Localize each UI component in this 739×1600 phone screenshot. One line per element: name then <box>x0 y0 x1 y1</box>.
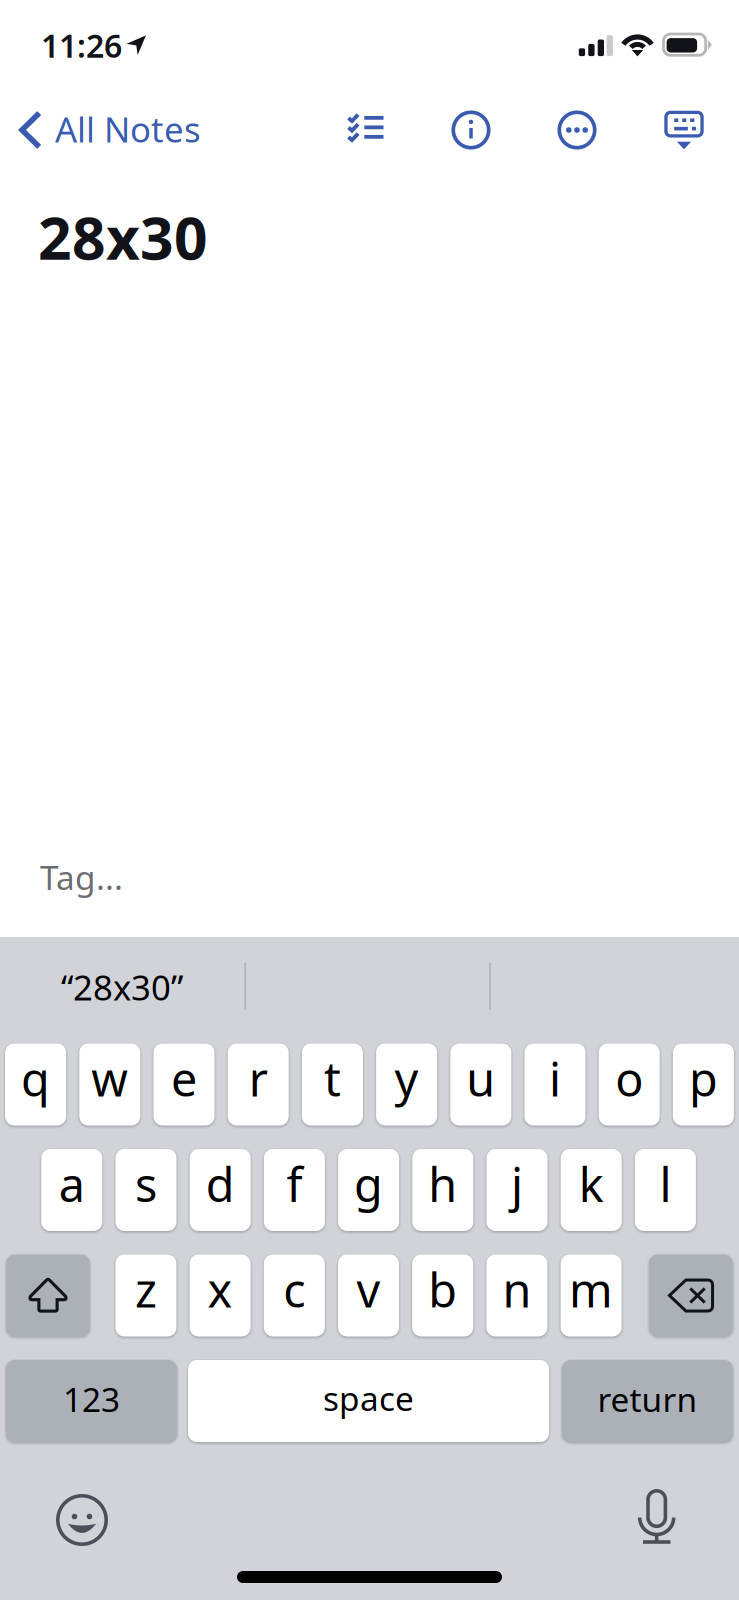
button[interactable]: c <box>264 1254 325 1336</box>
button[interactable]: t <box>302 1043 363 1125</box>
button[interactable]: r <box>228 1043 289 1125</box>
staticText: x <box>208 1258 233 1320</box>
staticText: 28x30 <box>38 198 208 276</box>
button[interactable]: q <box>5 1043 66 1125</box>
staticText: u <box>466 1047 495 1109</box>
staticText: p <box>689 1047 718 1109</box>
staticText: i <box>549 1047 561 1109</box>
staticText: r <box>249 1047 268 1109</box>
button[interactable]: h <box>412 1149 473 1231</box>
button[interactable]: Note info <box>433 92 509 168</box>
staticText: n <box>502 1258 531 1320</box>
button[interactable]: Delete <box>649 1254 733 1336</box>
staticText: g <box>354 1153 383 1215</box>
button[interactable]: x <box>190 1254 251 1336</box>
staticText: w <box>91 1047 128 1109</box>
staticText: a <box>59 1153 85 1215</box>
button[interactable]: g <box>338 1149 399 1231</box>
staticText: f <box>286 1153 302 1215</box>
button[interactable]: Checklist <box>328 92 404 160</box>
staticText: j <box>511 1153 523 1215</box>
button[interactable]: d <box>190 1149 251 1231</box>
staticText: s <box>135 1153 157 1215</box>
staticText: h <box>428 1153 457 1215</box>
staticText: 123 <box>63 1377 120 1421</box>
button[interactable]: More options <box>539 92 615 168</box>
button[interactable]: s <box>115 1149 176 1231</box>
staticText: l <box>659 1153 671 1215</box>
button[interactable]: m <box>561 1254 622 1336</box>
button[interactable]: v <box>338 1254 399 1336</box>
button[interactable]: f <box>264 1149 325 1231</box>
staticText: All Notes <box>55 106 201 152</box>
staticText: o <box>615 1047 643 1109</box>
staticText: y <box>395 1047 419 1109</box>
staticText: q <box>21 1047 50 1109</box>
staticText: z <box>135 1258 157 1320</box>
staticText: Tag... <box>40 855 123 899</box>
button[interactable]: 123 <box>6 1360 177 1442</box>
button[interactable]: b <box>412 1254 473 1336</box>
staticText: 11:26 <box>41 24 122 66</box>
button[interactable]: k <box>561 1149 622 1231</box>
staticText: return <box>597 1377 697 1421</box>
staticText: m <box>569 1258 613 1320</box>
staticText: space <box>323 1376 414 1420</box>
button[interactable]: Hide keyboard <box>646 92 722 168</box>
staticText: k <box>579 1153 604 1215</box>
button[interactable]: w <box>79 1043 140 1125</box>
button[interactable]: return <box>562 1360 733 1442</box>
button[interactable]: l <box>635 1149 696 1231</box>
staticText: e <box>171 1047 197 1109</box>
staticText: “28x30” <box>61 964 183 1010</box>
button[interactable]: j <box>486 1149 547 1231</box>
button[interactable]: y <box>376 1043 437 1125</box>
button[interactable]: z <box>115 1254 176 1336</box>
button[interactable]: All Notes <box>0 92 215 168</box>
button[interactable]: Dictation <box>617 1481 697 1553</box>
staticText: t <box>324 1047 341 1109</box>
staticText: b <box>428 1258 457 1320</box>
button[interactable]: space <box>188 1360 549 1442</box>
button[interactable]: u <box>450 1043 511 1125</box>
button[interactable]: i <box>524 1043 585 1125</box>
staticText: v <box>356 1258 380 1320</box>
button[interactable]: e <box>153 1043 214 1125</box>
button[interactable]: n <box>486 1254 547 1336</box>
staticText: c <box>283 1258 305 1320</box>
button[interactable]: Shift <box>6 1254 90 1336</box>
button[interactable]: Emoji keyboard <box>42 1484 122 1556</box>
button[interactable]: p <box>673 1043 734 1125</box>
staticText: d <box>206 1153 235 1215</box>
button[interactable]: a <box>41 1149 102 1231</box>
button[interactable]: o <box>599 1043 660 1125</box>
